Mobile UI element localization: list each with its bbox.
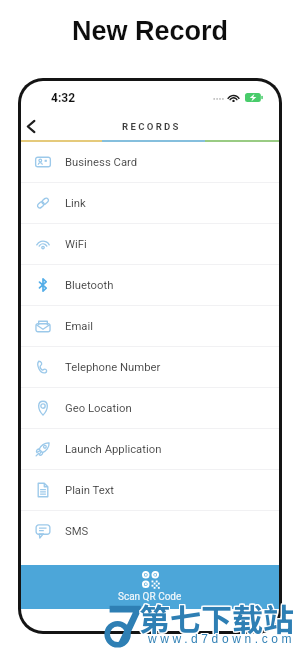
staticText: 第七下载站 [139,596,294,641]
staticText: 第七下载站 [138,595,293,640]
staticText: Plain Text [65,484,115,497]
staticText: www.d7down.com [147,631,295,644]
staticText: Launch Application [65,443,162,456]
staticText: www.d7down.com [148,633,296,646]
staticText: Bluetooth [65,279,114,292]
button[interactable]: SMS [21,511,279,551]
staticText: RECORDS [122,121,181,132]
button[interactable]: Back [21,112,45,140]
staticText: www.d7down.com [149,631,297,644]
button[interactable]: Scan QR Code [21,565,279,609]
button[interactable]: Plain Text [21,470,279,510]
button[interactable]: Launch Application [21,429,279,469]
staticText: www.d7down.com [147,632,295,645]
staticText: Link [65,197,86,210]
staticText: Business Card [65,156,138,169]
staticText: 第七下载站 [138,594,293,639]
button[interactable]: Geo Location [21,388,279,428]
staticText: www.d7down.com [149,632,297,645]
staticText: Email [65,320,93,333]
button[interactable]: Email [21,306,279,346]
button[interactable]: WiFi [21,224,279,264]
staticText: 第七下载站 [138,596,293,641]
staticText: 4:32 [51,91,76,105]
staticText: www.d7down.com [149,633,297,646]
staticText: Telephone Number [65,361,161,374]
button[interactable]: Business Card [21,142,279,182]
staticText: 第七下载站 [139,595,294,640]
button[interactable]: Link [21,183,279,223]
staticText: 第七下载站 [140,595,295,640]
button[interactable]: Bluetooth [21,265,279,305]
staticText: WiFi [65,238,87,251]
staticText: 第七下载站 [140,596,295,641]
staticText: Geo Location [65,402,132,415]
staticText: www.d7down.com [147,633,295,646]
staticText: www.d7down.com [148,632,296,645]
staticText: Scan QR Code [118,591,182,603]
staticText: 第七下载站 [140,594,295,639]
staticText: SMS [65,525,89,538]
staticText: www.d7down.com [148,631,296,644]
button[interactable]: Telephone Number [21,347,279,387]
staticText: 第七下载站 [139,594,294,639]
staticText: New Record [0,16,300,46]
